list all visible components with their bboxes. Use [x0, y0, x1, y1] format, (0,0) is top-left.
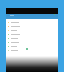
button[interactable] — [6, 40, 58, 44]
button[interactable] — [6, 48, 58, 52]
button[interactable] — [6, 28, 58, 32]
button[interactable] — [6, 24, 58, 28]
button[interactable] — [6, 44, 58, 48]
button[interactable] — [6, 36, 58, 40]
button[interactable] — [6, 32, 58, 36]
button[interactable] — [6, 20, 58, 24]
